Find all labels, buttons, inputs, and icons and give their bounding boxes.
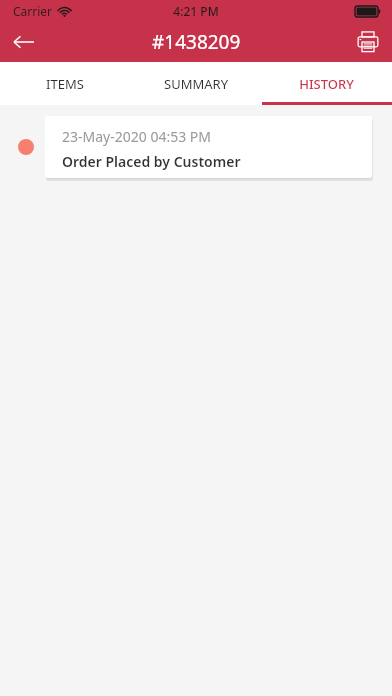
staticText: #1438209 [152,29,241,55]
staticText: HISTORY [299,75,354,93]
staticText: Carrier [13,3,53,19]
staticText: 4:21 PM [173,3,219,19]
button[interactable]: HISTORY [261,62,392,105]
button[interactable]: 23-May-2020 04:53 PM [45,116,372,178]
staticText: ITEMS [46,75,84,93]
staticText: 23-May-2020 04:53 PM [62,127,211,146]
staticText: Order Placed by Customer [62,152,241,171]
button[interactable]: ITEMS [0,62,130,105]
staticText: SUMMARY [164,75,228,93]
button[interactable]: Print [344,22,392,62]
button[interactable]: SUMMARY [130,62,261,105]
button[interactable]: Back [0,22,48,62]
